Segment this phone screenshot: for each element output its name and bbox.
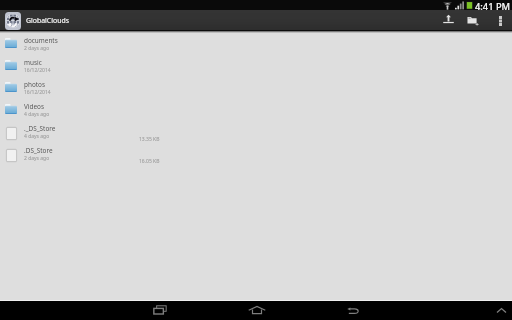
staticText: .DS_Store [24,146,53,155]
button[interactable]: music [0,55,512,77]
button[interactable]: App icon [5,12,21,30]
staticText: 4 days ago [24,111,50,118]
staticText: Videos [24,102,44,111]
staticText: 16/12/2014 [24,67,51,74]
staticText: documents [24,36,58,45]
button[interactable]: Recents [143,300,177,320]
staticText: 16/12/2014 [24,89,51,96]
staticText: 2 days ago [24,45,50,52]
staticText: 4:41 PM [475,0,511,10]
staticText: music [24,58,42,67]
button[interactable]: New folder [462,10,484,31]
button[interactable]: ._DS_Store [0,121,512,143]
staticText: 2 days ago [24,155,50,162]
button[interactable]: documents [0,33,512,55]
button[interactable]: Upload [437,10,459,31]
button[interactable]: Videos [0,99,512,121]
button[interactable]: Back [336,300,370,320]
button[interactable]: .DS_Store [0,143,512,165]
staticText: GlobalClouds [26,16,69,25]
staticText: 16.05 KB [139,158,160,165]
button[interactable]: More options [490,10,510,31]
button[interactable]: photos [0,77,512,99]
staticText: 4 days ago [24,133,50,140]
staticText: ._DS_Store [24,124,56,133]
button[interactable]: Expand status bar [490,300,512,320]
staticText: photos [24,80,45,89]
staticText: 13.35 KB [139,136,160,143]
button[interactable]: Home [240,300,274,320]
